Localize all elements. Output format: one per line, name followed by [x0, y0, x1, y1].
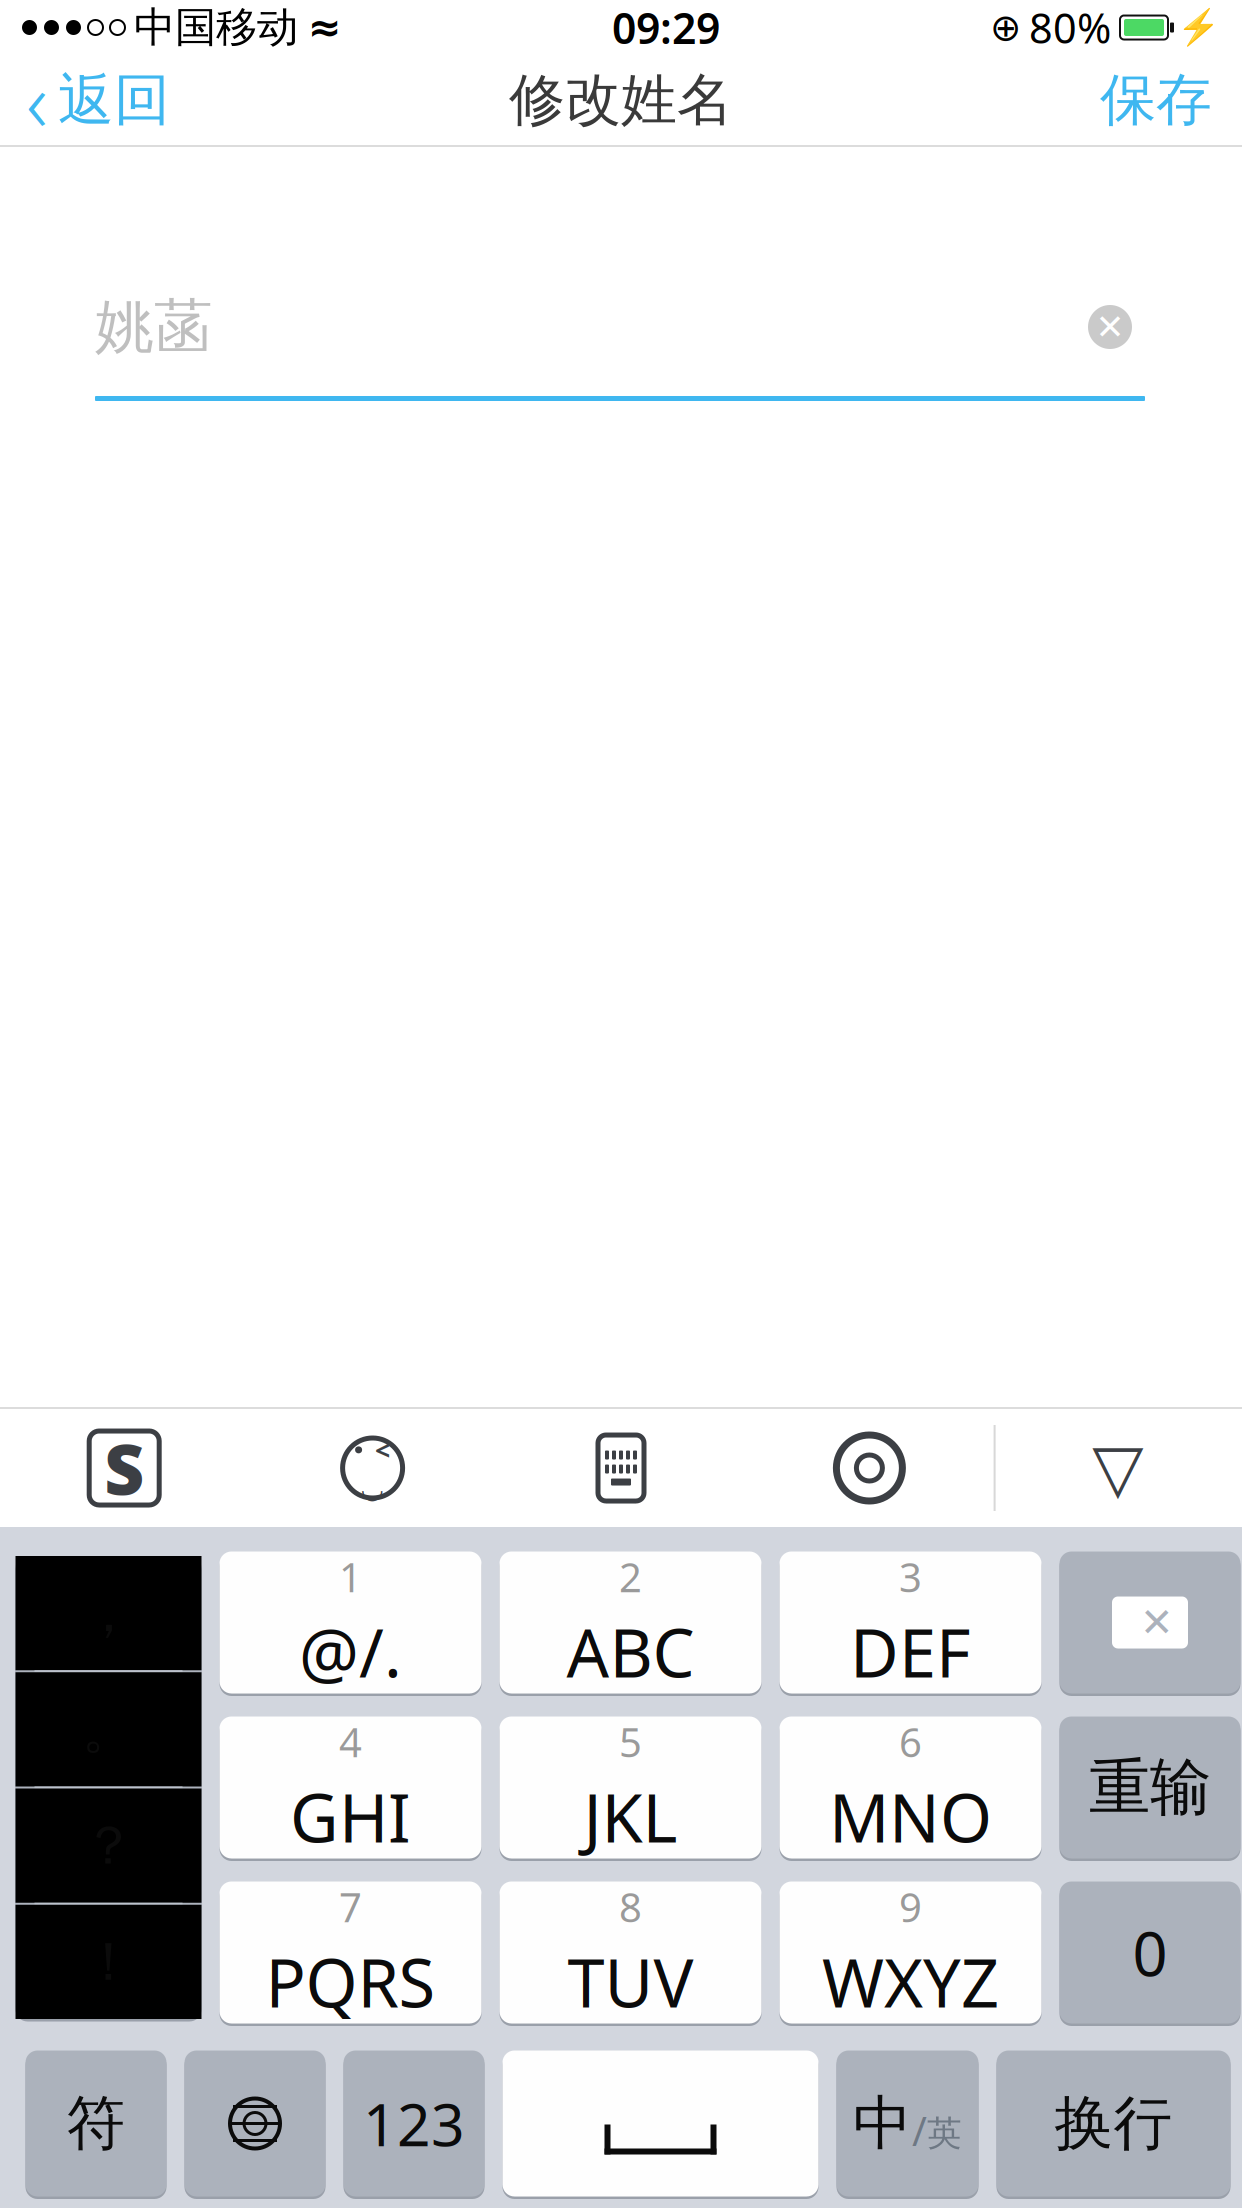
button[interactable]: 9: [779, 1879, 1041, 2026]
staticText: ⊕: [990, 6, 1021, 49]
button[interactable]: 空格: [502, 2048, 818, 2199]
button[interactable]: 切换输入语言: [184, 2048, 325, 2199]
staticText: S: [104, 1422, 144, 1514]
staticText: MNO: [829, 1772, 992, 1861]
button[interactable]: 设置: [826, 1425, 912, 1511]
button[interactable]: 保存: [1070, 56, 1242, 144]
button[interactable]: 搜狗输入法: [81, 1425, 167, 1511]
staticText: 符: [66, 2087, 125, 2160]
button[interactable]: 123: [343, 2048, 484, 2199]
staticText: ▽: [1092, 1430, 1143, 1506]
staticText: ABC: [566, 1607, 694, 1696]
staticText: 姚菡: [95, 291, 213, 363]
staticText: JKL: [583, 1772, 677, 1861]
staticText: DEF: [850, 1607, 971, 1696]
staticText: 123: [363, 2084, 465, 2162]
staticText: 3: [899, 1550, 922, 1603]
staticText: ⚡: [1177, 8, 1220, 47]
staticText: 9: [899, 1880, 922, 1933]
button[interactable]: 7: [219, 1879, 481, 2026]
staticText: 80%: [1029, 0, 1111, 55]
staticText: 返回: [58, 66, 170, 134]
staticText: 6: [899, 1715, 922, 1768]
staticText: ✕: [1140, 1600, 1174, 1645]
button[interactable]: ‹: [0, 56, 196, 144]
button[interactable]: 表情: [330, 1425, 416, 1511]
staticText: 中: [853, 2087, 912, 2160]
staticText: ✕: [1095, 307, 1124, 347]
staticText: 1: [339, 1550, 362, 1603]
button[interactable]: 1: [219, 1549, 481, 1696]
staticText: 重输: [1089, 1750, 1211, 1825]
button[interactable]: 清除: [1075, 292, 1145, 362]
button[interactable]: 5: [499, 1714, 761, 1861]
staticText: /: [912, 2104, 927, 2157]
staticText: <: [375, 1432, 390, 1468]
staticText: 修改姓名: [509, 66, 733, 134]
staticText: 2: [619, 1550, 642, 1603]
staticText: PQRS: [265, 1937, 435, 2026]
staticText: 保存: [1100, 66, 1212, 134]
button[interactable]: 删除: [1059, 1549, 1240, 1696]
button[interactable]: 重输: [1059, 1714, 1240, 1861]
staticText: 7: [339, 1880, 362, 1933]
button[interactable]: 键盘布局: [578, 1425, 664, 1511]
staticText: 09:29: [612, 0, 720, 56]
staticText: TUV: [567, 1937, 693, 2026]
staticText: 中国移动: [134, 2, 298, 53]
staticText: ‹: [26, 45, 48, 155]
button[interactable]: 3: [779, 1549, 1041, 1696]
button[interactable]: 换行: [996, 2048, 1230, 2199]
staticText: 英: [927, 2112, 962, 2155]
staticText: 5: [619, 1715, 642, 1768]
staticText: ≈: [308, 5, 342, 50]
button[interactable]: 收起键盘: [1075, 1425, 1161, 1511]
staticText: @/.: [299, 1607, 402, 1696]
staticText: GHI: [290, 1772, 411, 1861]
button[interactable]: 0: [1059, 1879, 1240, 2026]
button[interactable]: 4: [219, 1714, 481, 1861]
staticText: ◡: [362, 1474, 383, 1504]
button[interactable]: 2: [499, 1549, 761, 1696]
button[interactable]: 8: [499, 1879, 761, 2026]
button[interactable]: 中英文切换: [836, 2048, 978, 2199]
staticText: 换行: [1054, 2087, 1172, 2160]
staticText: WXYZ: [822, 1937, 999, 2026]
staticText: 0: [1132, 1912, 1167, 1993]
staticText: 4: [339, 1715, 362, 1768]
button[interactable]: 标点符号: [15, 1553, 201, 2021]
staticText: 8: [619, 1880, 642, 1933]
button[interactable]: 符: [25, 2048, 166, 2199]
button[interactable]: 6: [779, 1714, 1041, 1861]
